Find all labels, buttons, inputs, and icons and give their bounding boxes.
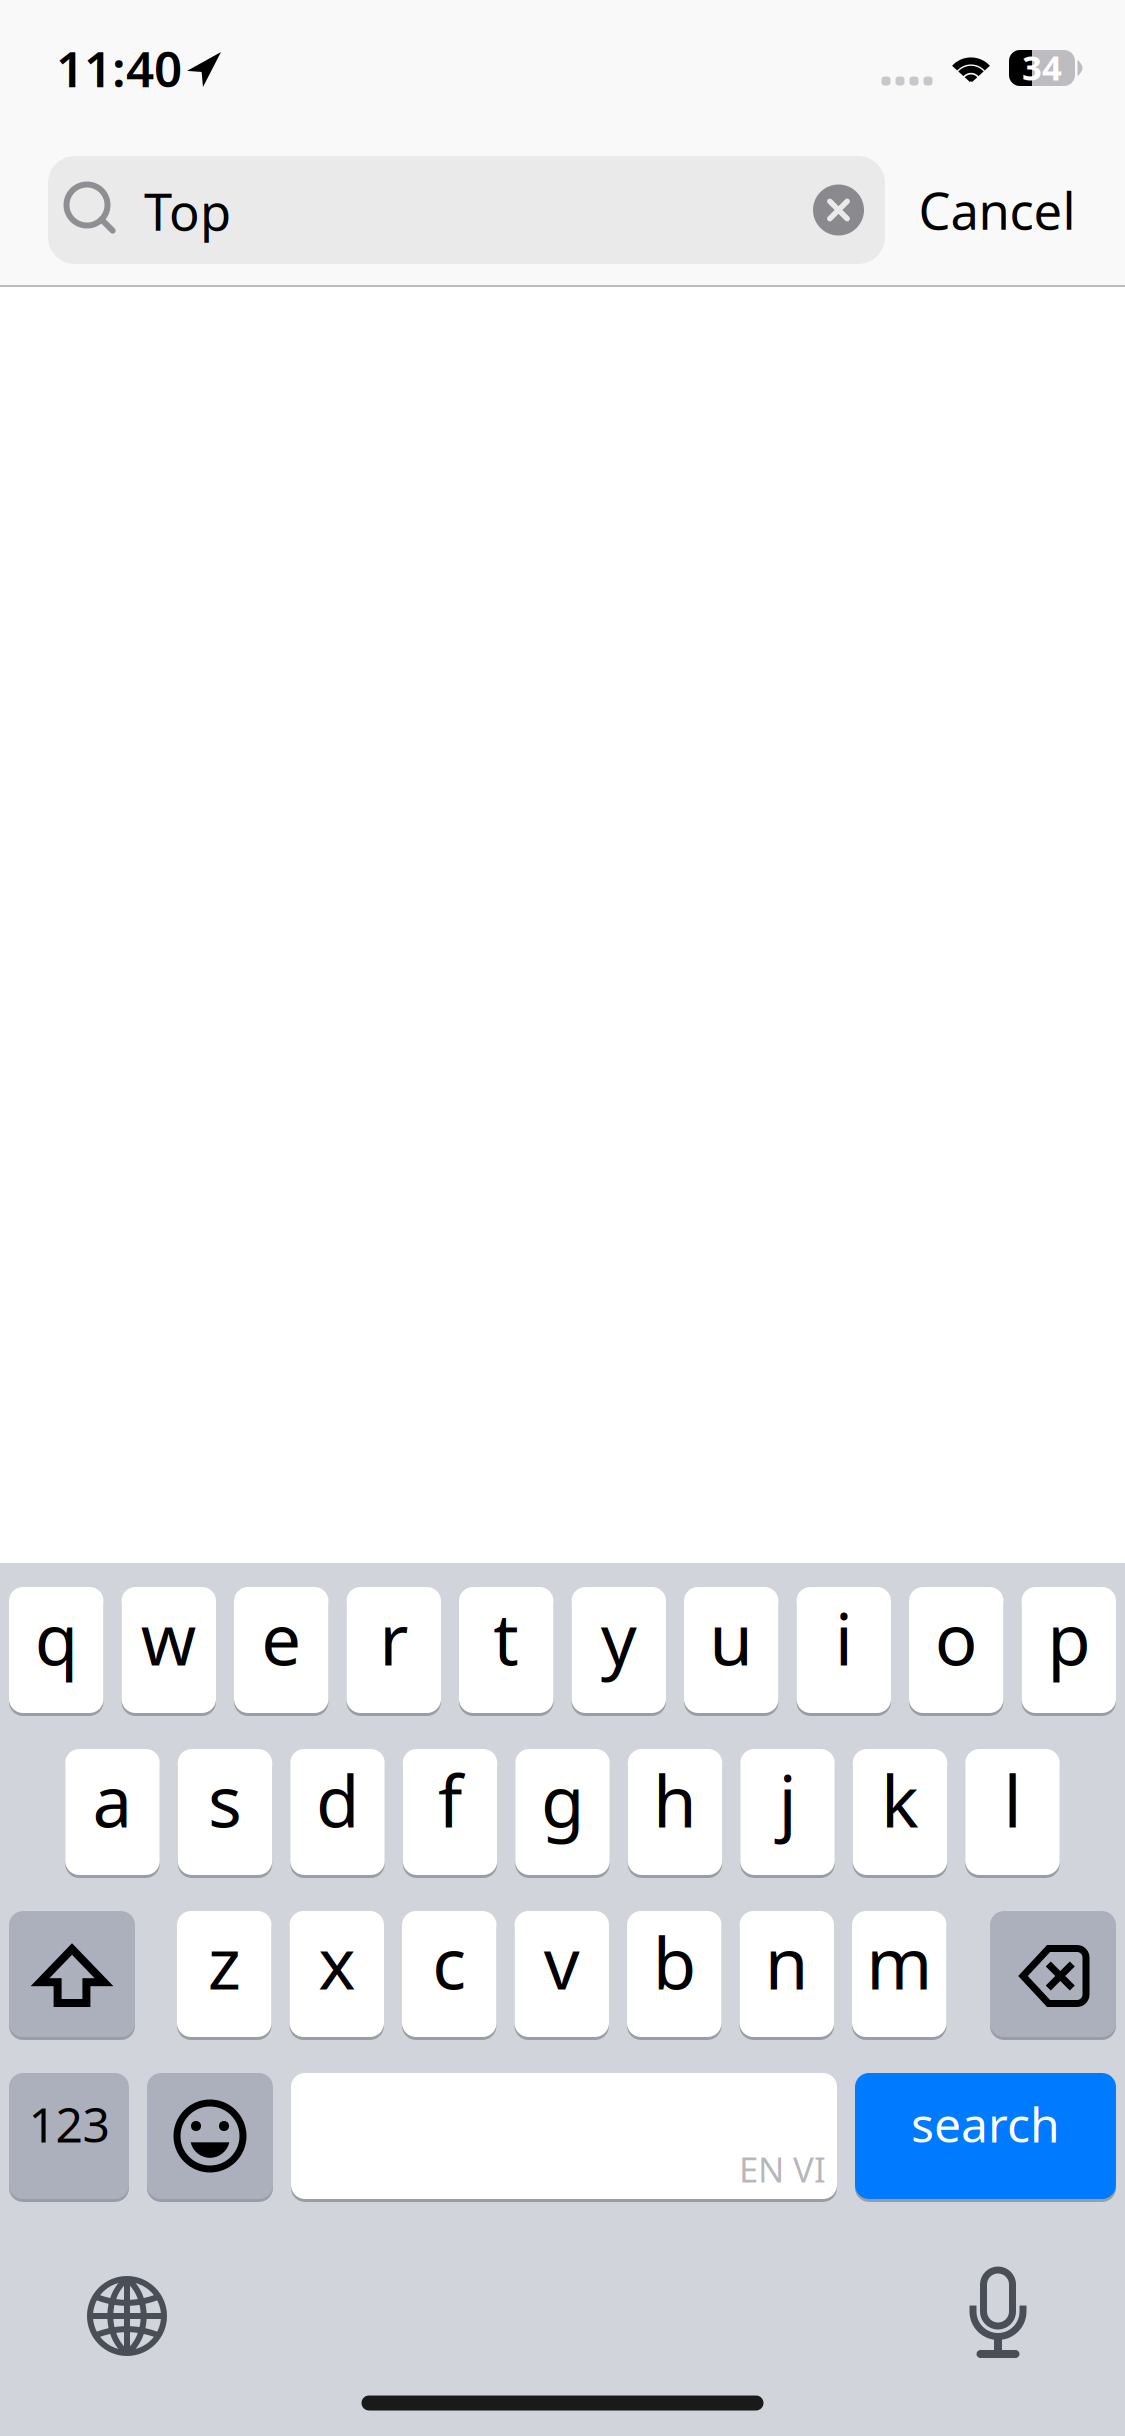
staticText: i: [835, 1591, 853, 1685]
button[interactable]: n: [0, 0, 1125, 2436]
button[interactable]: o: [0, 0, 1125, 2436]
staticText: h: [653, 1753, 697, 1847]
button[interactable]: z: [0, 0, 1125, 2436]
button[interactable]: f: [0, 0, 1125, 2436]
staticText: d: [316, 1753, 359, 1847]
staticText: o: [935, 1591, 978, 1685]
staticText: y: [601, 1591, 637, 1685]
staticText: Top: [144, 177, 231, 245]
button[interactable]: s: [0, 0, 1125, 2436]
staticText: b: [653, 1915, 696, 2009]
staticText: z: [208, 1915, 241, 2009]
button[interactable]: q: [0, 0, 1125, 2436]
staticText: g: [541, 1753, 584, 1847]
button[interactable]: v: [0, 0, 1125, 2436]
button[interactable]: Emoji: [0, 0, 1125, 2436]
staticText: s: [208, 1753, 242, 1847]
staticText: v: [544, 1915, 580, 2009]
staticText: k: [881, 1753, 919, 1847]
button[interactable]: l: [0, 0, 1125, 2436]
button[interactable]: h: [0, 0, 1125, 2436]
staticText: 34: [1022, 44, 1062, 90]
button[interactable]: u: [0, 0, 1125, 2436]
staticText: r: [379, 1591, 408, 1685]
staticText: c: [432, 1915, 466, 2009]
staticText: n: [765, 1915, 809, 2009]
button[interactable]: i: [0, 0, 1125, 2436]
button[interactable]: Top: [48, 156, 885, 264]
staticText: e: [261, 1591, 301, 1685]
button[interactable]: Cancel: [887, 156, 1107, 264]
button[interactable]: x: [0, 0, 1125, 2436]
button[interactable]: a: [0, 0, 1125, 2436]
button[interactable]: Shift: [0, 0, 1125, 2436]
button[interactable]: t: [0, 0, 1125, 2436]
staticText: search: [911, 2092, 1060, 2156]
staticText: t: [493, 1591, 519, 1685]
button[interactable]: p: [0, 0, 1125, 2436]
button[interactable]: search: [0, 0, 1125, 2436]
button[interactable]: b: [0, 0, 1125, 2436]
button[interactable]: d: [0, 0, 1125, 2436]
staticText: w: [141, 1591, 197, 1685]
staticText: EN VI: [739, 2146, 826, 2192]
staticText: m: [866, 1915, 932, 2009]
button[interactable]: g: [0, 0, 1125, 2436]
staticText: q: [35, 1591, 78, 1685]
button[interactable]: e: [0, 0, 1125, 2436]
button[interactable]: k: [0, 0, 1125, 2436]
button[interactable]: Switch keyboard: [87, 2276, 167, 2356]
button[interactable]: Dictation: [969, 2266, 1027, 2358]
button[interactable]: 123: [0, 0, 1125, 2436]
staticText: l: [1003, 1753, 1021, 1847]
button[interactable]: r: [0, 0, 1125, 2436]
button[interactable]: y: [0, 0, 1125, 2436]
button[interactable]: w: [0, 0, 1125, 2436]
staticText: u: [709, 1591, 753, 1685]
staticText: j: [778, 1753, 796, 1847]
staticText: 11:40: [56, 35, 182, 101]
staticText: a: [92, 1753, 132, 1847]
button[interactable]: Space: [0, 0, 1125, 2436]
button[interactable]: Delete: [0, 0, 1125, 2436]
staticText: x: [318, 1915, 355, 2009]
button[interactable]: m: [0, 0, 1125, 2436]
button[interactable]: j: [0, 0, 1125, 2436]
staticText: 123: [28, 2092, 109, 2156]
staticText: f: [438, 1753, 462, 1847]
staticText: Cancel: [918, 176, 1075, 244]
staticText: p: [1047, 1591, 1090, 1685]
button[interactable]: c: [0, 0, 1125, 2436]
